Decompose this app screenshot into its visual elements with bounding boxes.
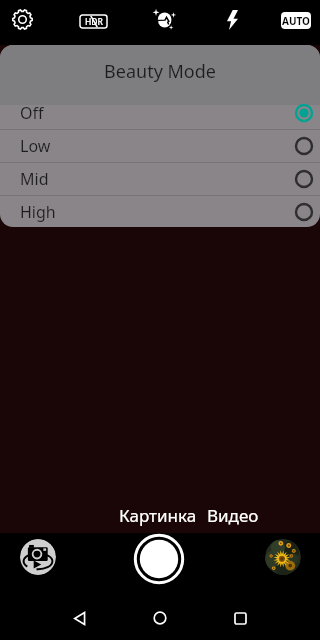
button[interactable]: Beauty mode [151,5,179,33]
staticText: High [20,201,56,223]
staticText: Картинка [119,504,197,527]
button[interactable]: Off [0,97,320,129]
button[interactable]: Gallery [265,539,301,575]
button[interactable]: Home [142,600,178,636]
button[interactable]: Back [62,600,98,636]
staticText: Mid [20,168,49,190]
button[interactable]: Recent apps [222,600,258,636]
staticText: AUTO [282,14,310,28]
button[interactable]: High [0,196,320,227]
button[interactable]: Flash [219,7,245,33]
staticText: Low [20,135,51,157]
staticText: Beauty Mode [104,59,216,84]
button[interactable]: Картинка [114,502,202,529]
staticText: Видео [207,504,259,527]
button[interactable]: Switch camera [20,539,56,575]
button[interactable]: Settings [6,3,38,35]
button[interactable]: Видео [202,502,264,529]
button[interactable]: Take photo [133,533,185,585]
staticText: Off [20,102,44,124]
button[interactable]: HDR off [76,8,110,34]
button[interactable]: Mid [0,163,320,195]
button[interactable]: Low [0,130,320,162]
button[interactable]: AUTO [281,12,311,29]
staticText: HDR [85,16,103,28]
